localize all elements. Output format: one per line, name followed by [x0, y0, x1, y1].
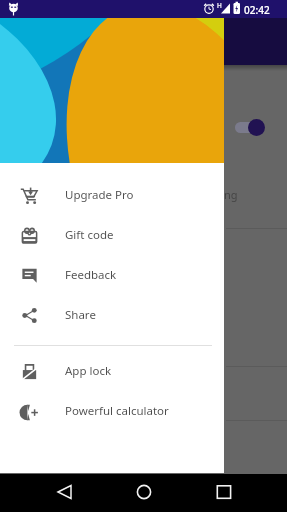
button[interactable]: App lock — [0, 351, 224, 391]
staticText: App lock — [65, 363, 112, 379]
staticText: Powerful calculator — [65, 403, 169, 419]
button[interactable]: Recent apps — [204, 474, 244, 512]
button[interactable]: Back — [44, 474, 84, 512]
button[interactable]: Share — [0, 295, 224, 335]
staticText: Share — [65, 307, 96, 323]
staticText: Upgrade Pro — [65, 187, 134, 203]
staticText: Setting — [201, 187, 238, 202]
button[interactable]: Powerful calculator — [0, 391, 224, 431]
button[interactable]: Upgrade Pro — [0, 175, 224, 215]
staticText: H — [217, 1, 222, 10]
staticText: Feedback — [65, 267, 117, 283]
staticText: Gift code — [65, 227, 114, 243]
staticText: 02:42 — [244, 3, 270, 17]
button[interactable]: Home — [124, 474, 164, 512]
button[interactable]: Gift code — [0, 215, 224, 255]
button[interactable]: Feedback — [0, 255, 224, 295]
